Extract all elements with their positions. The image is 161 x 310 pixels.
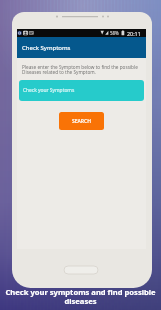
staticText: 20:11 xyxy=(127,30,141,37)
staticText: Check Symptoms xyxy=(22,44,71,52)
staticText: 58% xyxy=(110,30,119,36)
button[interactable]: Check your Symptoms xyxy=(19,80,144,101)
button[interactable]: SEARCH xyxy=(59,112,104,130)
staticText: Check your Symptoms xyxy=(23,87,75,94)
button[interactable]: Check Symptoms xyxy=(17,37,146,58)
staticText: Please enter the Symptom below to find t… xyxy=(22,64,142,76)
staticText: Check your symptoms and find possible di… xyxy=(2,287,159,306)
staticText: SEARCH xyxy=(72,118,91,125)
